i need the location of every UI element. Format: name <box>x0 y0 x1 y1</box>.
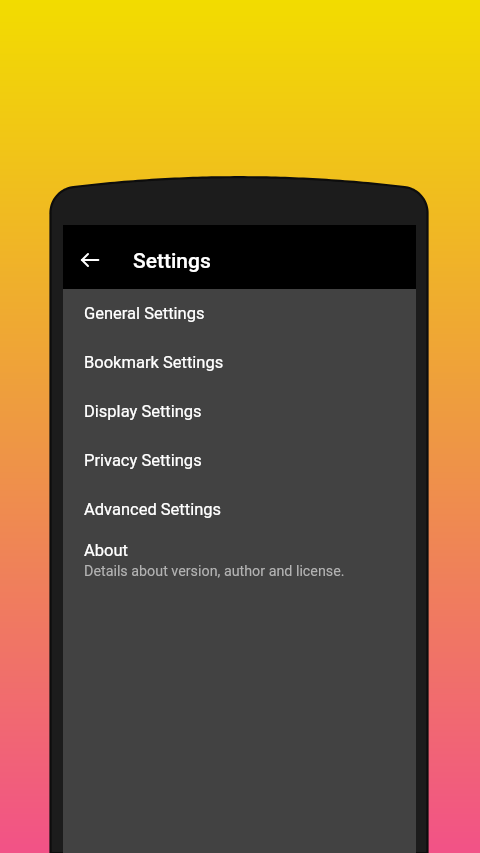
button[interactable]: Bookmark Settings <box>63 338 416 387</box>
staticText: Details about version, author and licens… <box>84 563 345 580</box>
button[interactable]: Advanced Settings <box>63 485 416 534</box>
button[interactable]: General Settings <box>63 289 416 338</box>
staticText: About <box>84 541 128 560</box>
button[interactable]: Back <box>66 236 114 284</box>
button[interactable]: About <box>63 534 416 588</box>
staticText: General Settings <box>84 304 205 323</box>
staticText: Advanced Settings <box>84 500 222 519</box>
staticText: Privacy Settings <box>84 451 202 470</box>
button[interactable]: Display Settings <box>63 387 416 436</box>
button[interactable]: Privacy Settings <box>63 436 416 485</box>
staticText: Settings <box>133 249 211 274</box>
staticText: Bookmark Settings <box>84 353 224 372</box>
staticText: Display Settings <box>84 402 202 421</box>
